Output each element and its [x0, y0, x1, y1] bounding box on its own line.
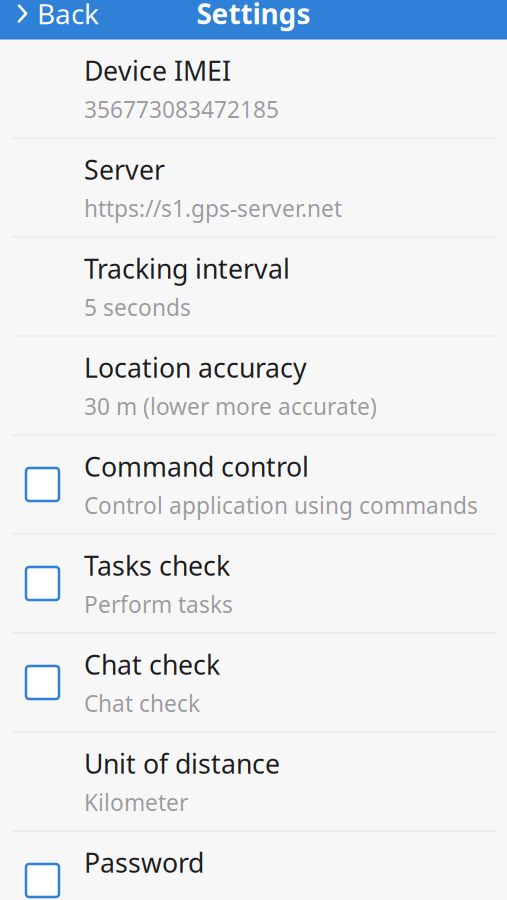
staticText: Unit of distance — [84, 746, 280, 781]
button[interactable]: Location accuracy — [0, 336, 507, 435]
staticText: Perform tasks — [84, 589, 233, 619]
button[interactable]: Server — [0, 138, 507, 237]
staticText: 356773083472185 — [84, 94, 279, 124]
staticText: Password — [84, 845, 204, 880]
staticText: Back — [37, 0, 99, 32]
staticText: Control application using commands — [84, 490, 478, 520]
staticText: Device IMEI — [84, 53, 231, 88]
staticText: Settings — [196, 0, 310, 32]
staticText: Tracking interval — [84, 251, 290, 286]
staticText: Command control — [84, 449, 309, 484]
staticText: Chat check — [84, 647, 220, 682]
button[interactable]: Device IMEI — [0, 39, 507, 138]
staticText: 5 seconds — [84, 292, 191, 322]
button[interactable]: Command control — [0, 435, 507, 534]
button[interactable]: Back — [0, 0, 111, 39]
staticText: Location accuracy — [84, 350, 307, 385]
button[interactable]: Tracking interval — [0, 237, 507, 336]
button[interactable]: Chat check — [0, 633, 507, 732]
staticText: 30 m (lower more accurate) — [84, 391, 377, 421]
staticText: Server — [84, 152, 165, 187]
button[interactable]: Tasks check — [0, 534, 507, 633]
button[interactable]: Password — [0, 831, 507, 900]
staticText: Kilometer — [84, 787, 188, 817]
button[interactable]: Unit of distance — [0, 732, 507, 831]
staticText: Chat check — [84, 688, 200, 718]
staticText: https://s1.gps-server.net — [84, 193, 342, 223]
staticText: Tasks check — [84, 548, 230, 583]
